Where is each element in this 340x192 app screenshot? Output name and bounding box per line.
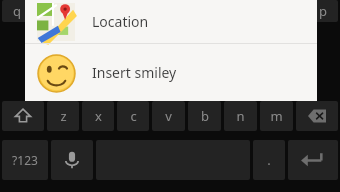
button[interactable]: . bbox=[253, 140, 285, 180]
staticText: n bbox=[236, 107, 245, 125]
button[interactable]: Enter bbox=[288, 140, 338, 180]
button[interactable]: Backspace bbox=[296, 101, 338, 131]
button[interactable]: ?123 bbox=[2, 140, 48, 180]
button[interactable]: Location bbox=[25, 0, 317, 43]
button[interactable]: p bbox=[308, 0, 338, 22]
staticText: b bbox=[201, 107, 209, 125]
button[interactable]: x bbox=[82, 101, 114, 131]
staticText: q bbox=[13, 2, 21, 20]
button[interactable]: c bbox=[117, 101, 149, 131]
button[interactable]: q bbox=[2, 0, 32, 22]
button[interactable]: z bbox=[47, 101, 79, 131]
button[interactable]: m bbox=[260, 101, 293, 131]
staticText: z bbox=[60, 107, 67, 125]
staticText: v bbox=[165, 107, 172, 125]
staticText: x bbox=[95, 107, 102, 125]
staticText: Location bbox=[92, 12, 149, 31]
button[interactable]: n bbox=[224, 101, 257, 131]
staticText: m bbox=[270, 107, 283, 125]
button[interactable]: Voice input bbox=[51, 140, 93, 180]
staticText: ?123 bbox=[12, 152, 38, 168]
button[interactable]: b bbox=[188, 101, 221, 131]
button[interactable]: v bbox=[152, 101, 185, 131]
staticText: p bbox=[319, 2, 327, 20]
staticText: c bbox=[130, 107, 137, 125]
staticText: Insert smiley bbox=[92, 63, 177, 82]
staticText: . bbox=[267, 151, 271, 169]
button[interactable]: Shift bbox=[2, 101, 44, 131]
button[interactable]: Insert smiley bbox=[25, 44, 317, 101]
